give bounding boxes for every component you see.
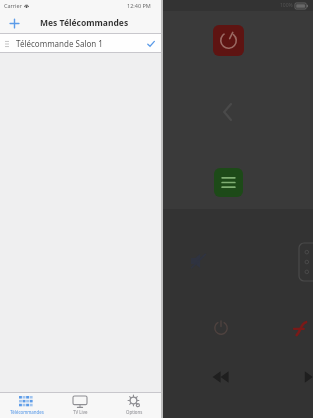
staticText: TV Live: [73, 409, 88, 415]
button[interactable]: Options: [107, 392, 161, 418]
staticText: Télécommandes: [10, 409, 44, 415]
staticText: Mes Télécommandes: [40, 17, 129, 29]
staticText: 12:40 PM: [127, 2, 151, 9]
staticText: Options: [126, 409, 143, 415]
staticText: 100%: [280, 2, 293, 9]
button[interactable]: Ajouter une télécommande: [4, 13, 24, 33]
staticText: Télécommande Salon 1: [16, 38, 103, 49]
button[interactable]: TV Live: [53, 392, 107, 418]
button[interactable]: Télécommandes: [0, 392, 53, 418]
staticText: Carrier: [4, 2, 22, 9]
button[interactable]: Télécommande Salon 1: [0, 34, 161, 53]
